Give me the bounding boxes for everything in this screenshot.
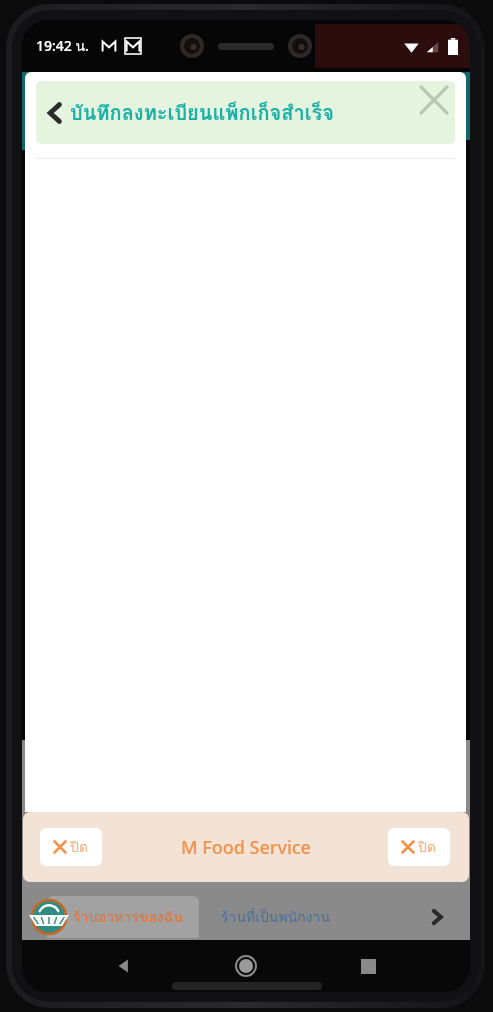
button[interactable]: Close	[421, 87, 447, 113]
button[interactable]: ปิด	[388, 828, 450, 866]
staticText: ปิด	[70, 836, 88, 858]
button[interactable]: Recents	[348, 946, 388, 986]
staticText: M Food Service	[181, 835, 311, 860]
button[interactable]: Home	[226, 946, 266, 986]
other: Back	[40, 98, 70, 128]
button[interactable]: My restaurants	[29, 897, 69, 937]
button[interactable]: Back	[40, 97, 335, 129]
button[interactable]: More	[420, 900, 454, 934]
staticText: 19:42 น.	[36, 35, 89, 57]
staticText: ปิด	[418, 836, 436, 858]
button[interactable]: ร้านที่เป็นพนักงาน	[221, 906, 330, 928]
button[interactable]: ร้านอาหารของฉัน	[47, 896, 199, 938]
button[interactable]: Back	[104, 946, 144, 986]
staticText: บันทึกลงทะเบียนแพ็กเก็จสำเร็จ	[70, 97, 335, 129]
button[interactable]: ปิด	[40, 828, 102, 866]
staticText: ร้านอาหารของฉัน	[73, 906, 183, 928]
